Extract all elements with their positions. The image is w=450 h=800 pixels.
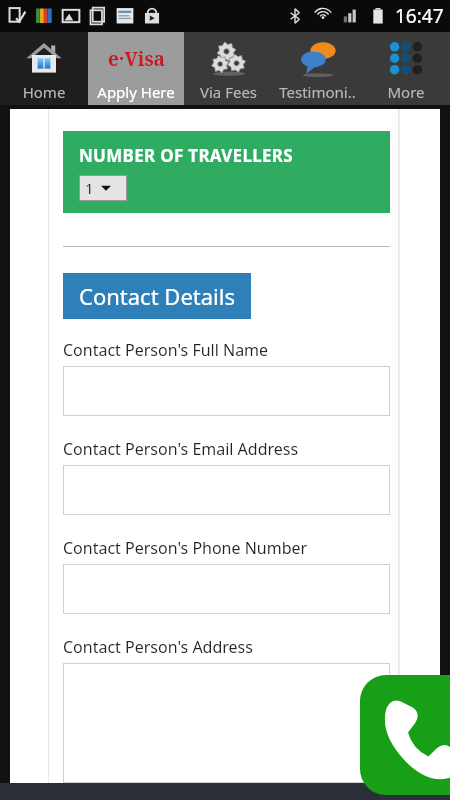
button[interactable] [63,663,390,783]
button[interactable]: Contact Details [79,273,235,319]
staticText: 1 [85,178,94,198]
staticText: Contact Details [79,281,235,311]
staticText: Via Fees [184,82,273,102]
staticText: Home [0,82,88,102]
staticText: NUMBER OF TRAVELLERS [79,144,293,167]
staticText: More [362,82,450,102]
button[interactable]: Testimoni.. [273,32,362,105]
button[interactable]: Home [0,32,88,105]
button[interactable] [63,564,390,614]
staticText: Contact Person's Address [63,636,253,658]
button[interactable]: Via Fees [184,32,273,105]
staticText: Contact Person's Full Name [63,339,269,361]
staticText: e·Visa [108,46,165,72]
button[interactable]: More [362,32,450,105]
button[interactable]: 1 [79,175,127,201]
staticText: Contact Person's Phone Number [63,537,308,559]
button[interactable]: Call [360,675,450,795]
staticText: Contact Person's Email Address [63,438,299,460]
button[interactable]: e·Visa [88,32,184,105]
button[interactable] [63,465,390,515]
staticText: 16:47 [395,3,444,29]
button[interactable] [63,366,390,416]
staticText: Testimoni.. [273,82,362,102]
staticText: Apply Here [88,82,184,102]
